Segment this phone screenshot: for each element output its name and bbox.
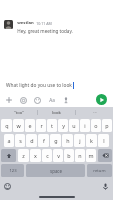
button[interactable]: Text formatting — [47, 95, 56, 104]
staticText: u — [72, 122, 76, 129]
button[interactable]: g — [50, 134, 61, 147]
staticText: o — [94, 122, 98, 129]
staticText: i — [84, 122, 86, 129]
button[interactable]: l — [98, 134, 109, 147]
button[interactable]: i — [80, 119, 90, 132]
button[interactable]: Dictation — [101, 182, 110, 191]
button[interactable]: j — [74, 134, 85, 147]
button[interactable]: h — [62, 134, 73, 147]
staticText: h — [66, 137, 70, 144]
button[interactable]: o — [91, 119, 101, 132]
button[interactable]: f — [38, 134, 49, 147]
button[interactable]: t — [47, 119, 57, 132]
button[interactable]: n — [75, 149, 85, 162]
staticText: 10:11 AM — [36, 21, 52, 26]
button[interactable]: e — [25, 119, 35, 132]
staticText: v — [57, 152, 60, 159]
button[interactable]: 123 — [1, 164, 24, 177]
button[interactable]: x — [30, 149, 41, 162]
button[interactable]: v — [53, 149, 63, 162]
button[interactable]: westlan — [0, 18, 113, 36]
button[interactable]: y — [58, 119, 68, 132]
staticText: a — [7, 137, 11, 144]
staticText: n — [78, 152, 82, 159]
staticText: y — [62, 122, 65, 129]
button[interactable]: Send — [96, 94, 107, 105]
button[interactable]: k — [86, 134, 97, 147]
button[interactable]: look — [38, 107, 75, 118]
button[interactable]: r — [36, 119, 46, 132]
staticText: k — [90, 137, 93, 144]
button[interactable]: Add attachment — [5, 96, 13, 104]
button[interactable]: a — [4, 134, 14, 147]
staticText: c — [46, 152, 49, 159]
button[interactable]: p — [102, 119, 112, 132]
button[interactable]: Backspace — [98, 149, 112, 162]
staticText: r — [40, 122, 43, 129]
staticText: Hey, great meeting today. — [17, 28, 73, 34]
staticText: g — [54, 137, 58, 144]
staticText: w — [16, 122, 21, 129]
button[interactable]: z — [18, 149, 29, 162]
button[interactable]: return — [87, 164, 112, 177]
button[interactable]: Voice message — [62, 96, 70, 104]
staticText: look — [52, 110, 61, 116]
staticText: t — [51, 122, 53, 129]
staticText: 123 — [9, 168, 17, 174]
staticText: m — [88, 152, 94, 159]
staticText: p — [105, 122, 109, 129]
button[interactable]: w — [13, 119, 24, 132]
staticText: What light do you use to look — [6, 82, 72, 89]
staticText: z — [22, 152, 25, 159]
staticText: x — [34, 152, 37, 159]
button[interactable]: d — [26, 134, 37, 147]
button[interactable]: s — [15, 134, 25, 147]
staticText: q — [5, 122, 9, 129]
staticText: return — [93, 168, 106, 174]
staticText: f — [43, 137, 45, 144]
button[interactable]: Shift — [1, 149, 16, 162]
button[interactable]: c — [42, 149, 52, 162]
staticText: s — [19, 137, 22, 144]
button[interactable]: Camera — [19, 96, 27, 104]
staticText: "too" — [14, 110, 24, 116]
staticText: westlan — [17, 20, 34, 26]
staticText: b — [67, 152, 71, 159]
button[interactable]: u — [69, 119, 79, 132]
button[interactable]: What light do you use to look — [4, 79, 109, 92]
button[interactable]: m — [86, 149, 96, 162]
button[interactable]: space — [26, 164, 85, 177]
staticText: e — [28, 122, 32, 129]
button[interactable]: "too" — [0, 107, 37, 118]
button[interactable]: Stickers — [33, 96, 41, 104]
staticText: space — [50, 168, 62, 174]
button[interactable]: q — [1, 119, 12, 132]
staticText: j — [79, 137, 81, 144]
staticText: ··· — [93, 110, 97, 116]
staticText: l — [103, 137, 105, 144]
staticText: d — [30, 137, 34, 144]
button[interactable]: Emoji keyboard — [3, 182, 12, 191]
staticText: Aa — [49, 97, 55, 103]
button[interactable]: b — [64, 149, 74, 162]
